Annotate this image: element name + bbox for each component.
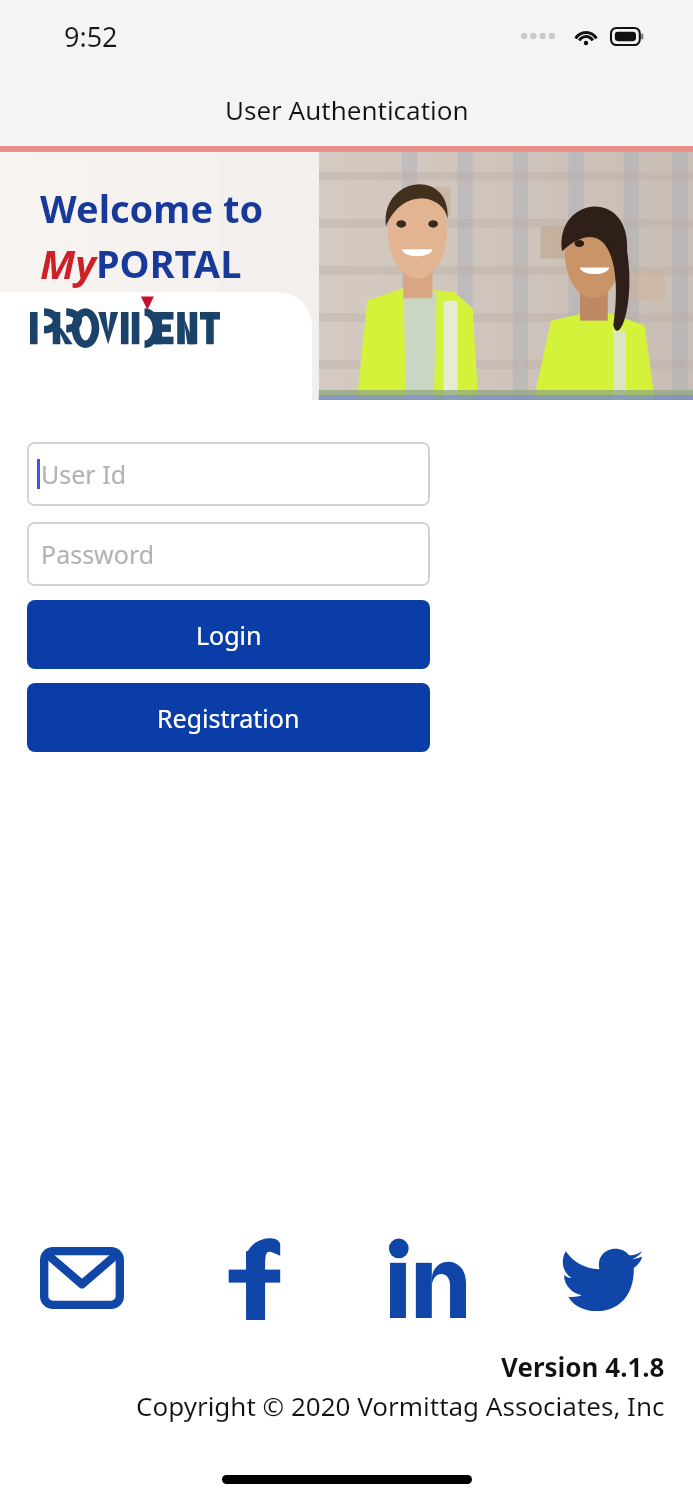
button[interactable]: LinkedIn xyxy=(380,1233,476,1323)
staticText: 9:52 xyxy=(64,18,118,55)
staticText: Login xyxy=(196,618,262,652)
staticText: Welcome to xyxy=(40,182,264,234)
staticText: My xyxy=(40,236,96,290)
staticText: User Authentication xyxy=(225,92,469,127)
staticText: User Id xyxy=(41,457,127,491)
button[interactable]: Login xyxy=(27,600,430,669)
button[interactable]: Twitter xyxy=(553,1233,649,1323)
staticText: Password xyxy=(41,537,155,571)
staticText: PORTAL xyxy=(96,237,242,289)
button[interactable]: Password xyxy=(27,522,430,586)
button[interactable]: Email xyxy=(34,1233,130,1323)
button[interactable]: Facebook xyxy=(207,1233,303,1323)
staticText: Copyright © 2020 Vormittag Associates, I… xyxy=(136,1388,665,1423)
staticText: Version 4.1.8 xyxy=(501,1349,665,1384)
staticText: Registration xyxy=(157,701,300,735)
button[interactable]: Registration xyxy=(27,683,430,752)
button[interactable]: User Id xyxy=(27,442,430,506)
